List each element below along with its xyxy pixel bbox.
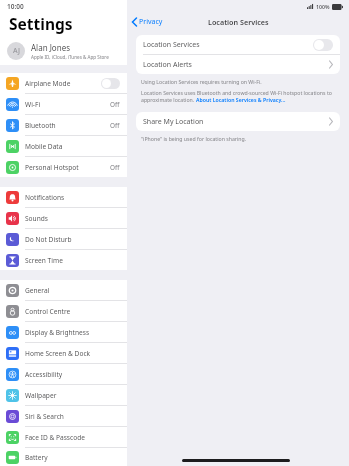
button[interactable]: Control Centre [0, 301, 127, 321]
staticText: Settings [9, 13, 73, 34]
staticText: Control Centre [25, 307, 120, 316]
staticText: Wallpaper [25, 391, 120, 400]
staticText: Notifications [25, 193, 120, 202]
button[interactable]: Mobile Data [0, 136, 127, 156]
staticText: Sounds [25, 214, 120, 223]
staticText: 10:00 [7, 2, 24, 11]
button[interactable]: Battery [0, 448, 127, 466]
staticText: 100% [316, 3, 330, 10]
staticText: Wi-Fi [25, 100, 110, 109]
button[interactable]: Location Services [136, 35, 340, 54]
staticText: Bluetooth [25, 121, 110, 130]
staticText: Off [110, 100, 120, 109]
staticText: Location Services uses Bluetooth and cro… [141, 89, 335, 96]
button[interactable]: Privacy [132, 17, 163, 27]
staticText: Location Services [143, 40, 313, 50]
button[interactable]: Notifications [0, 187, 127, 207]
staticText: Airplane Mode [25, 79, 101, 88]
staticText: Screen Time [25, 256, 120, 265]
staticText: Accessibility [25, 370, 120, 379]
staticText: "iPhone" is being used for location shar… [141, 135, 247, 142]
staticText: Alan Jones [31, 42, 70, 53]
button[interactable]: Bluetooth [0, 115, 127, 135]
button[interactable]: Personal Hotspot [0, 157, 127, 177]
button[interactable]: Face ID & Passcode [0, 427, 127, 447]
staticText: Apple ID, iCloud, iTunes & App Store [31, 54, 109, 60]
button[interactable]: Wi-Fi [0, 94, 127, 114]
staticText: approximate location. [141, 96, 196, 103]
staticText: Off [110, 121, 120, 130]
staticText: Display & Brightness [25, 328, 120, 337]
button[interactable]: Do Not Disturb [0, 229, 127, 249]
button[interactable]: Home Screen & Dock [0, 343, 127, 363]
staticText: Location Alerts [143, 60, 329, 70]
staticText: General [25, 286, 120, 295]
staticText: Do Not Disturb [25, 235, 120, 244]
staticText: Personal Hotspot [25, 163, 110, 172]
button[interactable]: About Location Services & Privacy... [196, 96, 286, 103]
button[interactable]: Wallpaper [0, 385, 127, 405]
button[interactable]: General [0, 280, 127, 300]
button[interactable]: Airplane Mode toggle [101, 78, 120, 89]
button[interactable]: Sounds [0, 208, 127, 228]
staticText: Battery [25, 453, 120, 462]
button[interactable]: AJ [0, 36, 127, 65]
staticText: Home Screen & Dock [25, 349, 120, 358]
staticText: About Location Services & Privacy... [196, 96, 286, 103]
button[interactable]: Display & Brightness [0, 322, 127, 342]
staticText: Privacy [139, 17, 163, 27]
button[interactable]: Screen Time [0, 250, 127, 270]
staticText: Share My Location [143, 117, 329, 127]
staticText: Face ID & Passcode [25, 433, 120, 442]
button[interactable]: Airplane Mode [0, 73, 127, 93]
button[interactable]: Accessibility [0, 364, 127, 384]
staticText: Location Services [208, 17, 269, 27]
button[interactable]: Share My Location [136, 112, 340, 131]
button[interactable]: Location Alerts [136, 55, 340, 74]
button[interactable]: Location Services toggle [313, 39, 333, 51]
staticText: Using Location Services requires turning… [141, 78, 262, 85]
staticText: Siri & Search [25, 412, 120, 421]
button[interactable]: Siri & Search [0, 406, 127, 426]
staticText: Off [110, 163, 120, 172]
staticText: AJ [13, 46, 20, 56]
staticText: Mobile Data [25, 142, 120, 151]
